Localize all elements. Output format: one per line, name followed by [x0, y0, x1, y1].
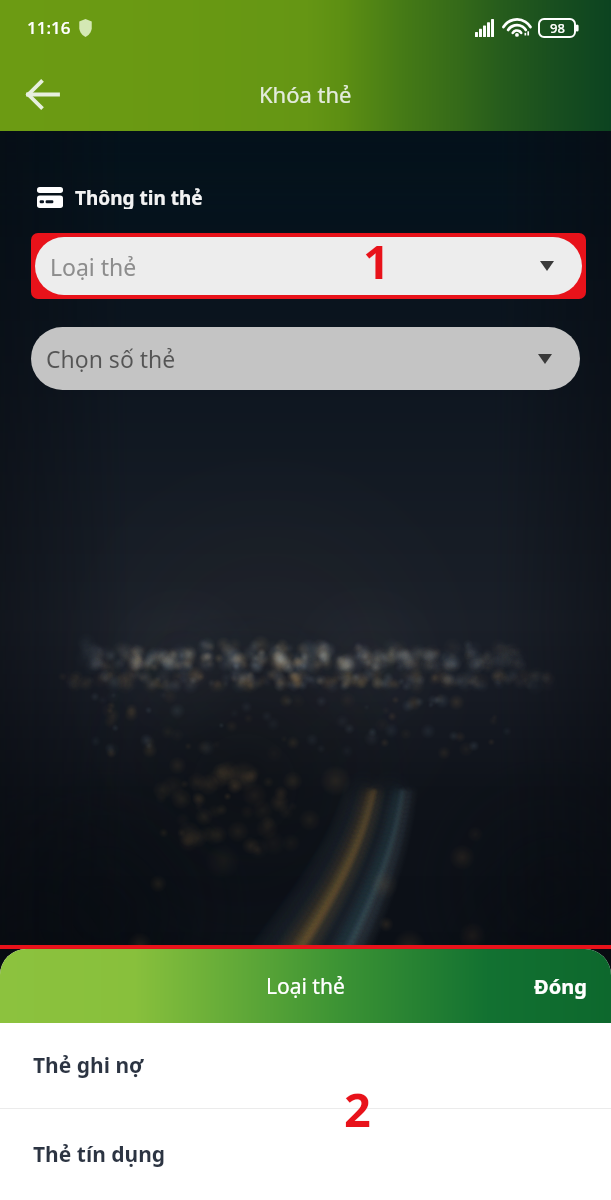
staticText: Thông tin thẻ [75, 185, 203, 209]
staticText: 98 [550, 19, 565, 37]
staticText: Khóa thẻ [259, 79, 352, 109]
staticText: Loại thẻ [50, 251, 137, 282]
button[interactable]: Loại thẻ [35, 237, 582, 295]
button[interactable]: Thẻ ghi nợ [0, 1023, 611, 1108]
button[interactable]: Back [8, 60, 76, 128]
staticText: Chọn số thẻ [46, 343, 176, 374]
staticText: Loại thẻ [266, 972, 345, 1001]
button[interactable]: Thẻ tín dụng [0, 1109, 611, 1200]
button[interactable]: Chọn số thẻ [31, 327, 580, 390]
button[interactable]: Đóng [510, 959, 611, 1014]
staticText: 1 [363, 237, 390, 287]
staticText: Thẻ tín dụng [33, 1140, 166, 1169]
staticText: Thẻ ghi nợ [33, 1051, 144, 1080]
staticText: Đóng [534, 973, 587, 1000]
staticText: 11:16 [27, 16, 71, 39]
staticText: 2 [344, 1077, 371, 1141]
